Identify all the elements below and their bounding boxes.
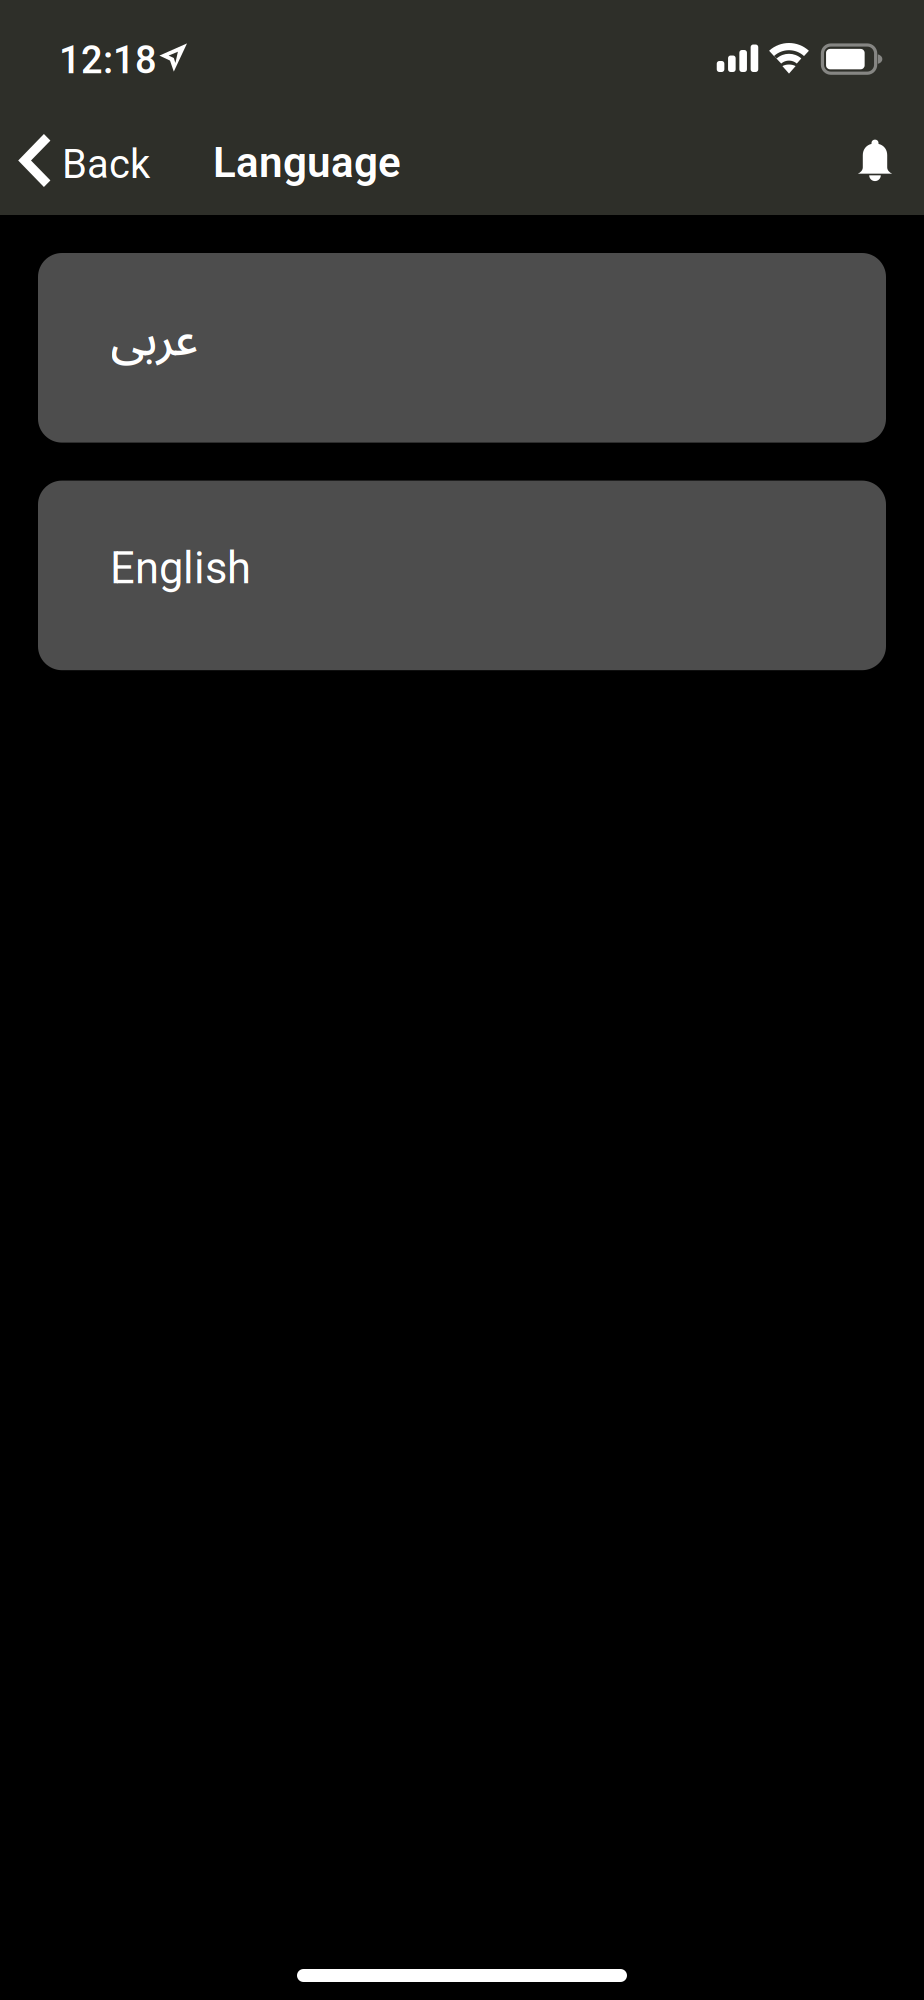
- staticText: Back: [62, 141, 150, 188]
- staticText: Language: [213, 138, 401, 187]
- button[interactable]: Notifications: [829, 110, 921, 215]
- staticText: English: [110, 543, 251, 594]
- staticText: 12:18: [59, 38, 157, 82]
- button[interactable]: Back: [0, 110, 150, 215]
- button[interactable]: English: [38, 481, 886, 670]
- button[interactable]: عربى: [38, 253, 886, 443]
- staticText: عربى: [110, 293, 198, 389]
